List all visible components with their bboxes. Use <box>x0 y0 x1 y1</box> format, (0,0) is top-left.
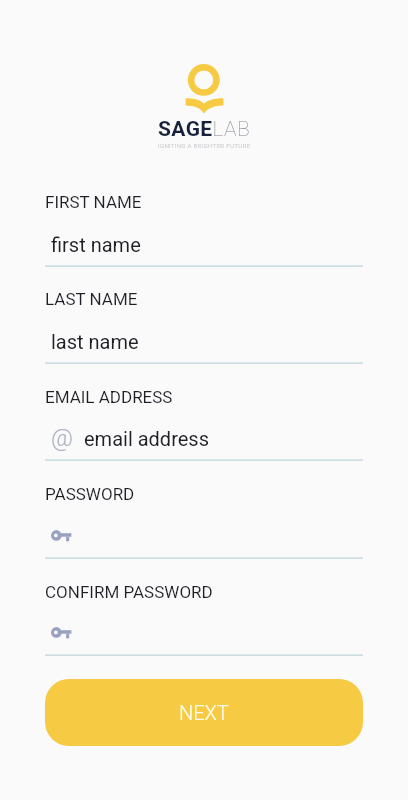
staticText: @ <box>51 424 73 452</box>
staticText: EMAIL ADDRESS <box>45 387 173 407</box>
staticText: email address <box>84 427 209 450</box>
staticText: last name <box>51 330 139 353</box>
button[interactable]: FIRST NAME <box>45 192 142 212</box>
button[interactable]: LAST NAME <box>45 289 138 309</box>
button[interactable]: NEXT <box>45 679 363 746</box>
button[interactable]: PASSWORD <box>45 484 135 504</box>
staticText: first name <box>51 233 141 256</box>
staticText: NEXT <box>179 701 229 724</box>
other: Password <box>51 627 73 640</box>
staticText: FIRST NAME <box>45 192 142 212</box>
staticText: LAST NAME <box>45 289 138 309</box>
button[interactable]: EMAIL ADDRESS <box>45 387 173 407</box>
staticText: PASSWORD <box>45 484 135 504</box>
button[interactable]: CONFIRM PASSWORD <box>45 582 213 602</box>
staticText: SAGELAB <box>158 117 251 142</box>
other: Password <box>51 530 73 543</box>
staticText: IGNITING A BRIGHTER FUTURE <box>158 142 251 149</box>
staticText: CONFIRM PASSWORD <box>45 582 213 602</box>
